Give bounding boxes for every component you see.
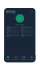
staticText: Water	[21, 33, 25, 35]
button[interactable]: Exercise	[20, 26, 33, 29]
staticText: Stand	[7, 30, 11, 31]
staticText: More	[29, 59, 33, 60]
button[interactable]: Activity	[6, 10, 18, 13]
button[interactable]: Daily activity ring, 72 percent	[15, 14, 24, 23]
button[interactable]: Profile	[30, 10, 33, 13]
button[interactable]: Heart	[6, 34, 19, 36]
button[interactable]: More	[28, 55, 35, 61]
staticText: Share	[21, 59, 26, 60]
staticText: 312	[7, 28, 10, 30]
button[interactable]: Move	[6, 26, 19, 29]
staticText: 28	[21, 28, 23, 30]
button[interactable]: Stand	[6, 30, 19, 33]
staticText: Sleep	[21, 30, 25, 31]
staticText: Trends	[13, 59, 19, 60]
button[interactable]: Today	[4, 55, 12, 61]
staticText: Heart	[7, 33, 11, 35]
staticText: Today	[5, 59, 10, 60]
staticText: 1.4L	[21, 35, 24, 37]
staticText: 9	[7, 31, 8, 33]
button[interactable]: Water	[20, 34, 33, 36]
button[interactable]: Trends	[12, 55, 20, 61]
button[interactable]: Share	[20, 55, 28, 61]
button[interactable]: Sleep	[20, 30, 33, 33]
staticText: 1,284 steps	[15, 24, 24, 26]
staticText: Activity	[6, 10, 15, 13]
staticText: 7h	[21, 31, 23, 33]
